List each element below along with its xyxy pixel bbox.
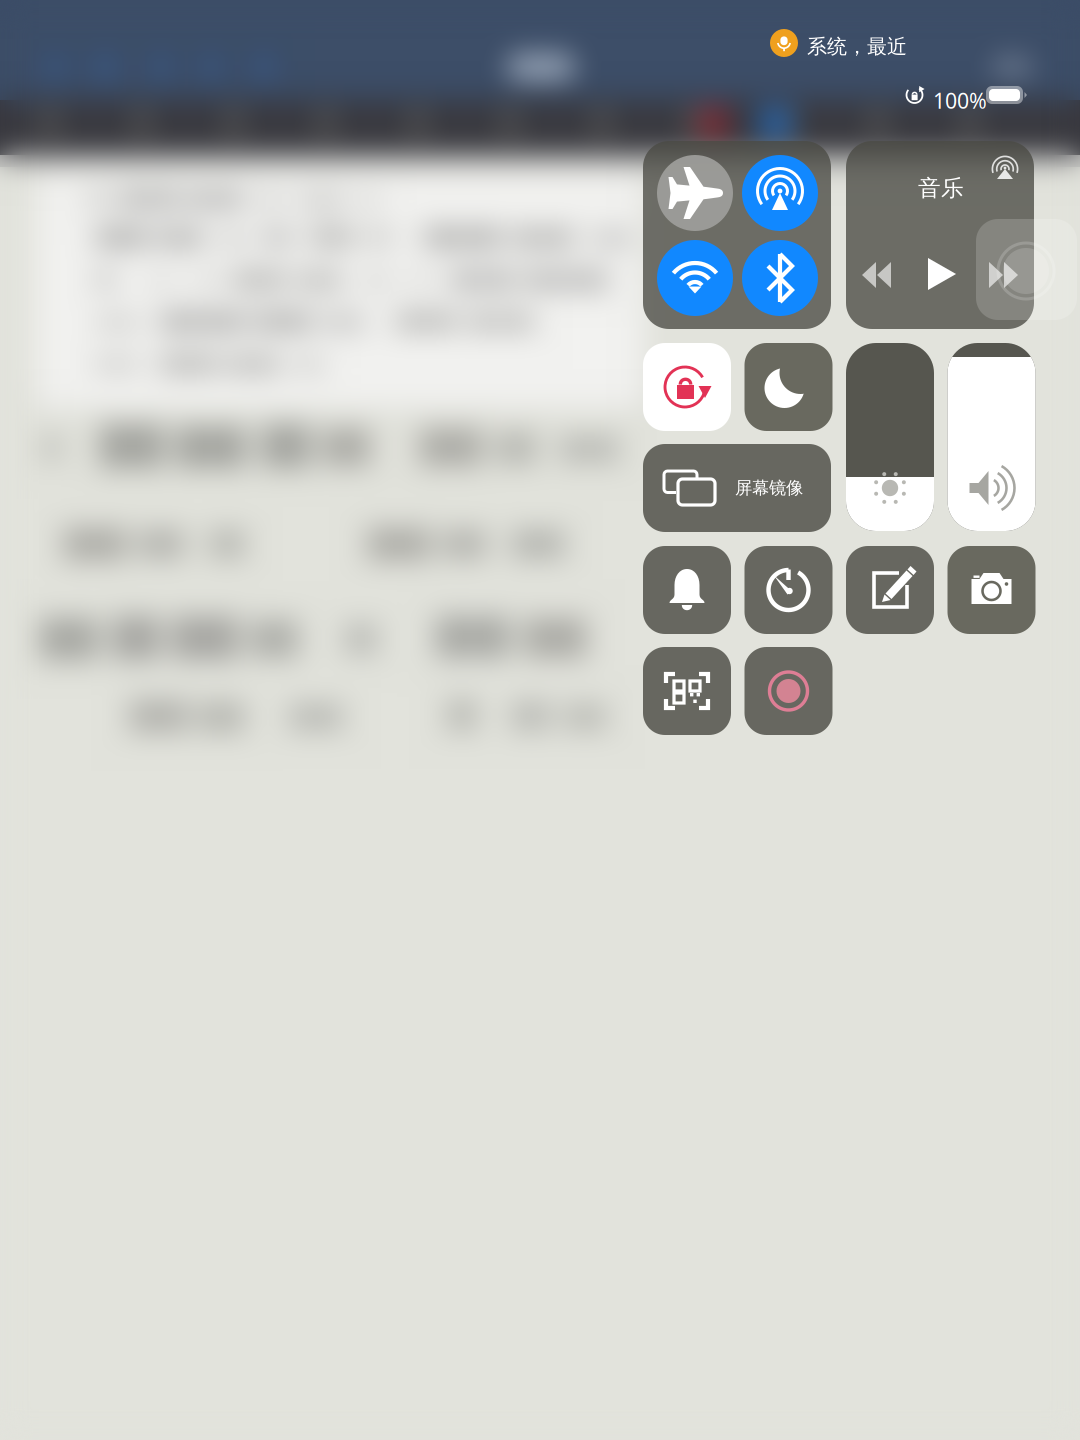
button[interactable] [742,155,818,231]
button[interactable]: AirPlay [992,153,1018,179]
button[interactable] [657,155,733,231]
button[interactable]: Play [928,258,956,290]
staticText: 屏幕镜像 [735,477,803,499]
button[interactable]: Previous track [862,262,891,288]
button[interactable] [744,343,832,431]
staticText: 系统，最近 [807,34,907,59]
button[interactable]: Volume [947,343,1035,531]
button[interactable] [643,343,731,431]
staticText: 音乐 [918,174,964,203]
button[interactable] [744,546,832,634]
button[interactable] [643,647,731,735]
button[interactable] [744,647,832,735]
button[interactable]: Brightness [846,343,934,531]
button[interactable] [846,546,934,634]
button[interactable] [947,546,1035,634]
button[interactable] [657,240,733,316]
button[interactable]: 屏幕镜像 [643,444,831,532]
button[interactable] [643,546,731,634]
staticText: 100% [933,86,987,115]
button[interactable] [742,240,818,316]
button[interactable]: Next track [989,262,1018,288]
